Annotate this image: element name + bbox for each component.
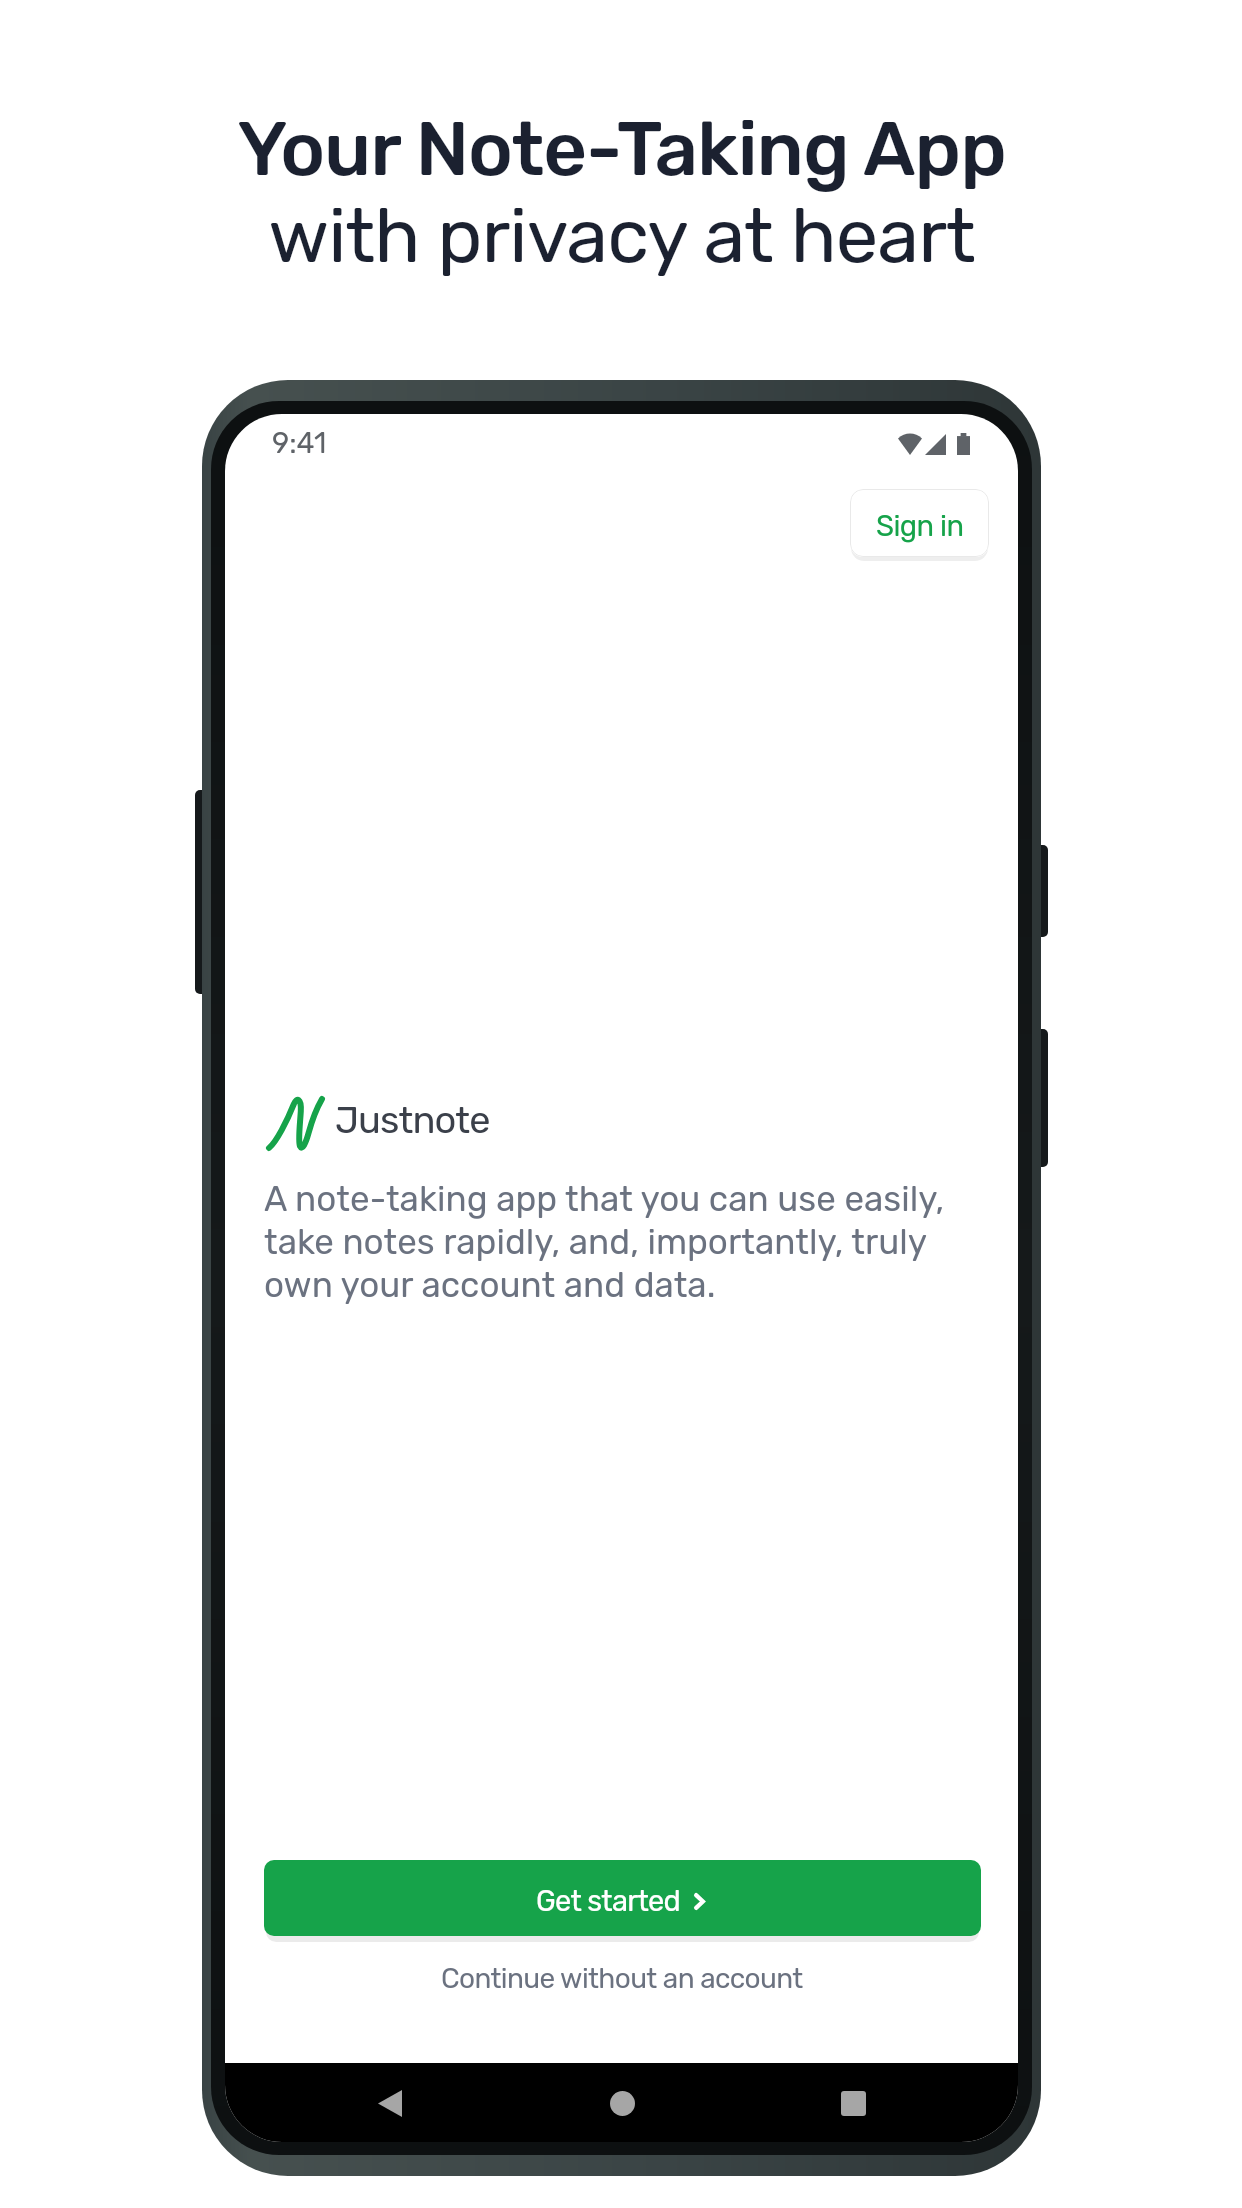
staticText: Your Note-Taking App [237,104,1006,194]
staticText: Continue without an account [441,1962,803,1995]
staticText: Sign in [876,509,964,543]
button[interactable]: Back [365,2078,415,2128]
staticText: with privacy at heart [268,191,975,281]
staticText: Justnote [335,1097,490,1142]
staticText: 9:41 [272,426,327,460]
button[interactable]: Continue without an account [225,1949,1018,2007]
button[interactable]: Home [597,2078,647,2128]
button[interactable]: Sign in [850,489,989,557]
button[interactable]: Get started [264,1860,981,1936]
staticText: A note-taking app that you can use easil… [264,1178,945,1306]
button[interactable]: Recent apps [828,2078,878,2128]
staticText: Get started [536,1884,681,1918]
